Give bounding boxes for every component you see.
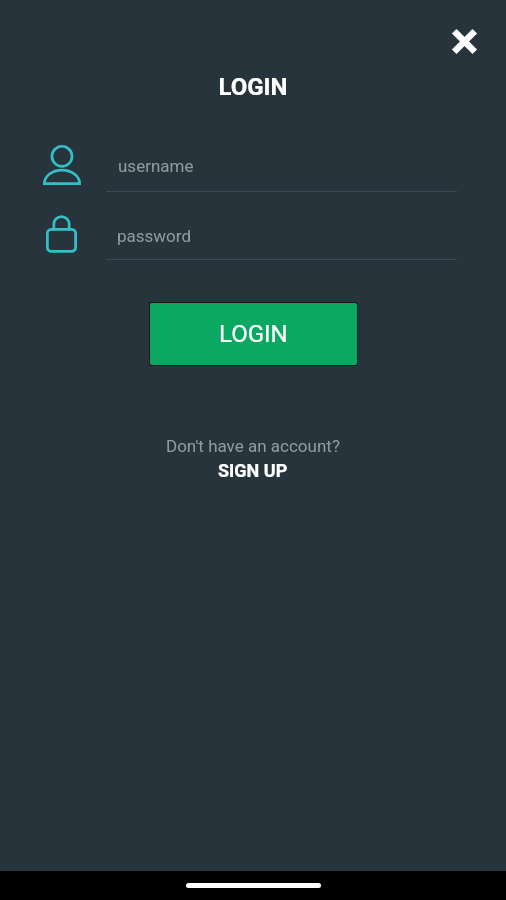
staticText: LOGIN [219, 320, 288, 348]
staticText: username [118, 156, 194, 176]
button[interactable]: Close [438, 15, 490, 67]
staticText: password [117, 226, 192, 246]
button[interactable]: Home [186, 883, 321, 888]
button[interactable]: SIGN UP [218, 460, 288, 481]
staticText: SIGN UP [218, 460, 288, 481]
staticText: Don't have an account? [166, 436, 340, 456]
staticText: LOGIN [0, 73, 506, 101]
button[interactable]: LOGIN [150, 303, 357, 365]
